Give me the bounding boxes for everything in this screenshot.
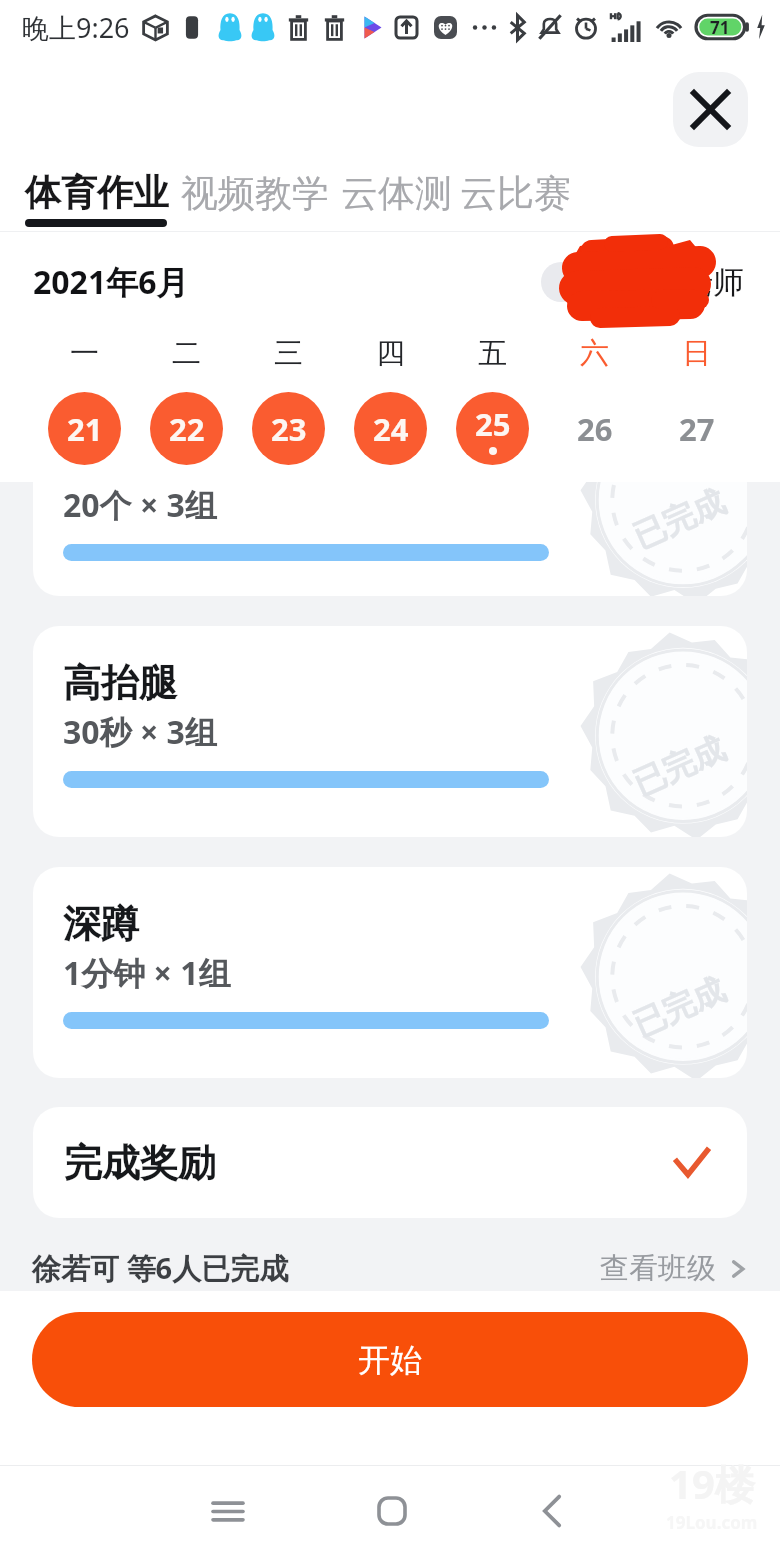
button[interactable]: [541, 262, 581, 302]
button[interactable]: 已完成: [33, 867, 747, 1078]
staticText: 19Lou.com: [666, 1511, 758, 1534]
staticText: 1分钟 × 1组: [63, 951, 231, 995]
staticText: 四: [376, 335, 405, 372]
staticText: 一: [70, 335, 99, 372]
button[interactable]: 已完成: [33, 482, 747, 596]
button[interactable]: 25: [456, 392, 529, 465]
staticText: 日: [682, 335, 711, 372]
staticText: 25: [475, 403, 511, 445]
button[interactable]: 开始: [32, 1312, 748, 1407]
button[interactable]: Home: [359, 1478, 425, 1544]
button[interactable]: 视频教学: [181, 170, 329, 217]
staticText: 查看班级: [600, 1250, 716, 1287]
button[interactable]: 24: [354, 392, 427, 465]
staticText: 王小花老师: [589, 263, 744, 302]
button[interactable]: 查看班级: [600, 1250, 750, 1287]
staticText: 23: [271, 408, 307, 450]
staticText: 体育作业: [25, 170, 169, 215]
button[interactable]: Recents: [195, 1478, 261, 1544]
staticText: 19楼: [669, 1456, 755, 1511]
staticText: 徐若可 等6人已完成: [32, 1248, 289, 1288]
button[interactable]: 已完成: [33, 626, 747, 837]
staticText: 视频教学: [181, 170, 329, 217]
staticText: 完成奖励: [64, 1139, 216, 1187]
button[interactable]: 体育作业: [25, 170, 169, 227]
staticText: 71: [710, 16, 730, 39]
staticText: 五: [478, 335, 507, 372]
staticText: 开始: [358, 1340, 422, 1380]
button[interactable]: 22: [150, 392, 223, 465]
staticText: 已完成: [627, 969, 731, 1045]
button[interactable]: 23: [252, 392, 325, 465]
staticText: 30秒 × 3组: [63, 710, 217, 754]
staticText: 晚上9:26: [22, 9, 130, 46]
button[interactable]: 云比赛: [460, 170, 571, 217]
staticText: 高抬腿: [63, 659, 177, 707]
staticText: 24: [373, 408, 409, 450]
staticText: 21: [67, 408, 103, 450]
staticText: 云比赛: [460, 170, 571, 217]
staticText: 深蹲: [63, 900, 139, 948]
button[interactable]: 21: [48, 392, 121, 465]
staticText: 云体测: [341, 170, 452, 217]
staticText: 22: [169, 408, 205, 450]
staticText: 二: [172, 335, 201, 372]
staticText: 26: [577, 408, 613, 450]
button[interactable]: Close: [673, 72, 748, 147]
button[interactable]: 云体测: [341, 170, 452, 217]
button[interactable]: Back: [519, 1478, 585, 1544]
button[interactable]: 26: [558, 392, 631, 465]
staticText: 三: [274, 335, 303, 372]
staticText: 27: [679, 408, 715, 450]
staticText: 已完成: [627, 482, 731, 557]
button[interactable]: 完成奖励: [33, 1107, 747, 1218]
staticText: 六: [580, 335, 609, 372]
staticText: 已完成: [627, 728, 731, 804]
button[interactable]: 27: [660, 392, 733, 465]
staticText: 2021年6月: [33, 260, 189, 304]
staticText: 20个 × 3组: [63, 483, 217, 527]
